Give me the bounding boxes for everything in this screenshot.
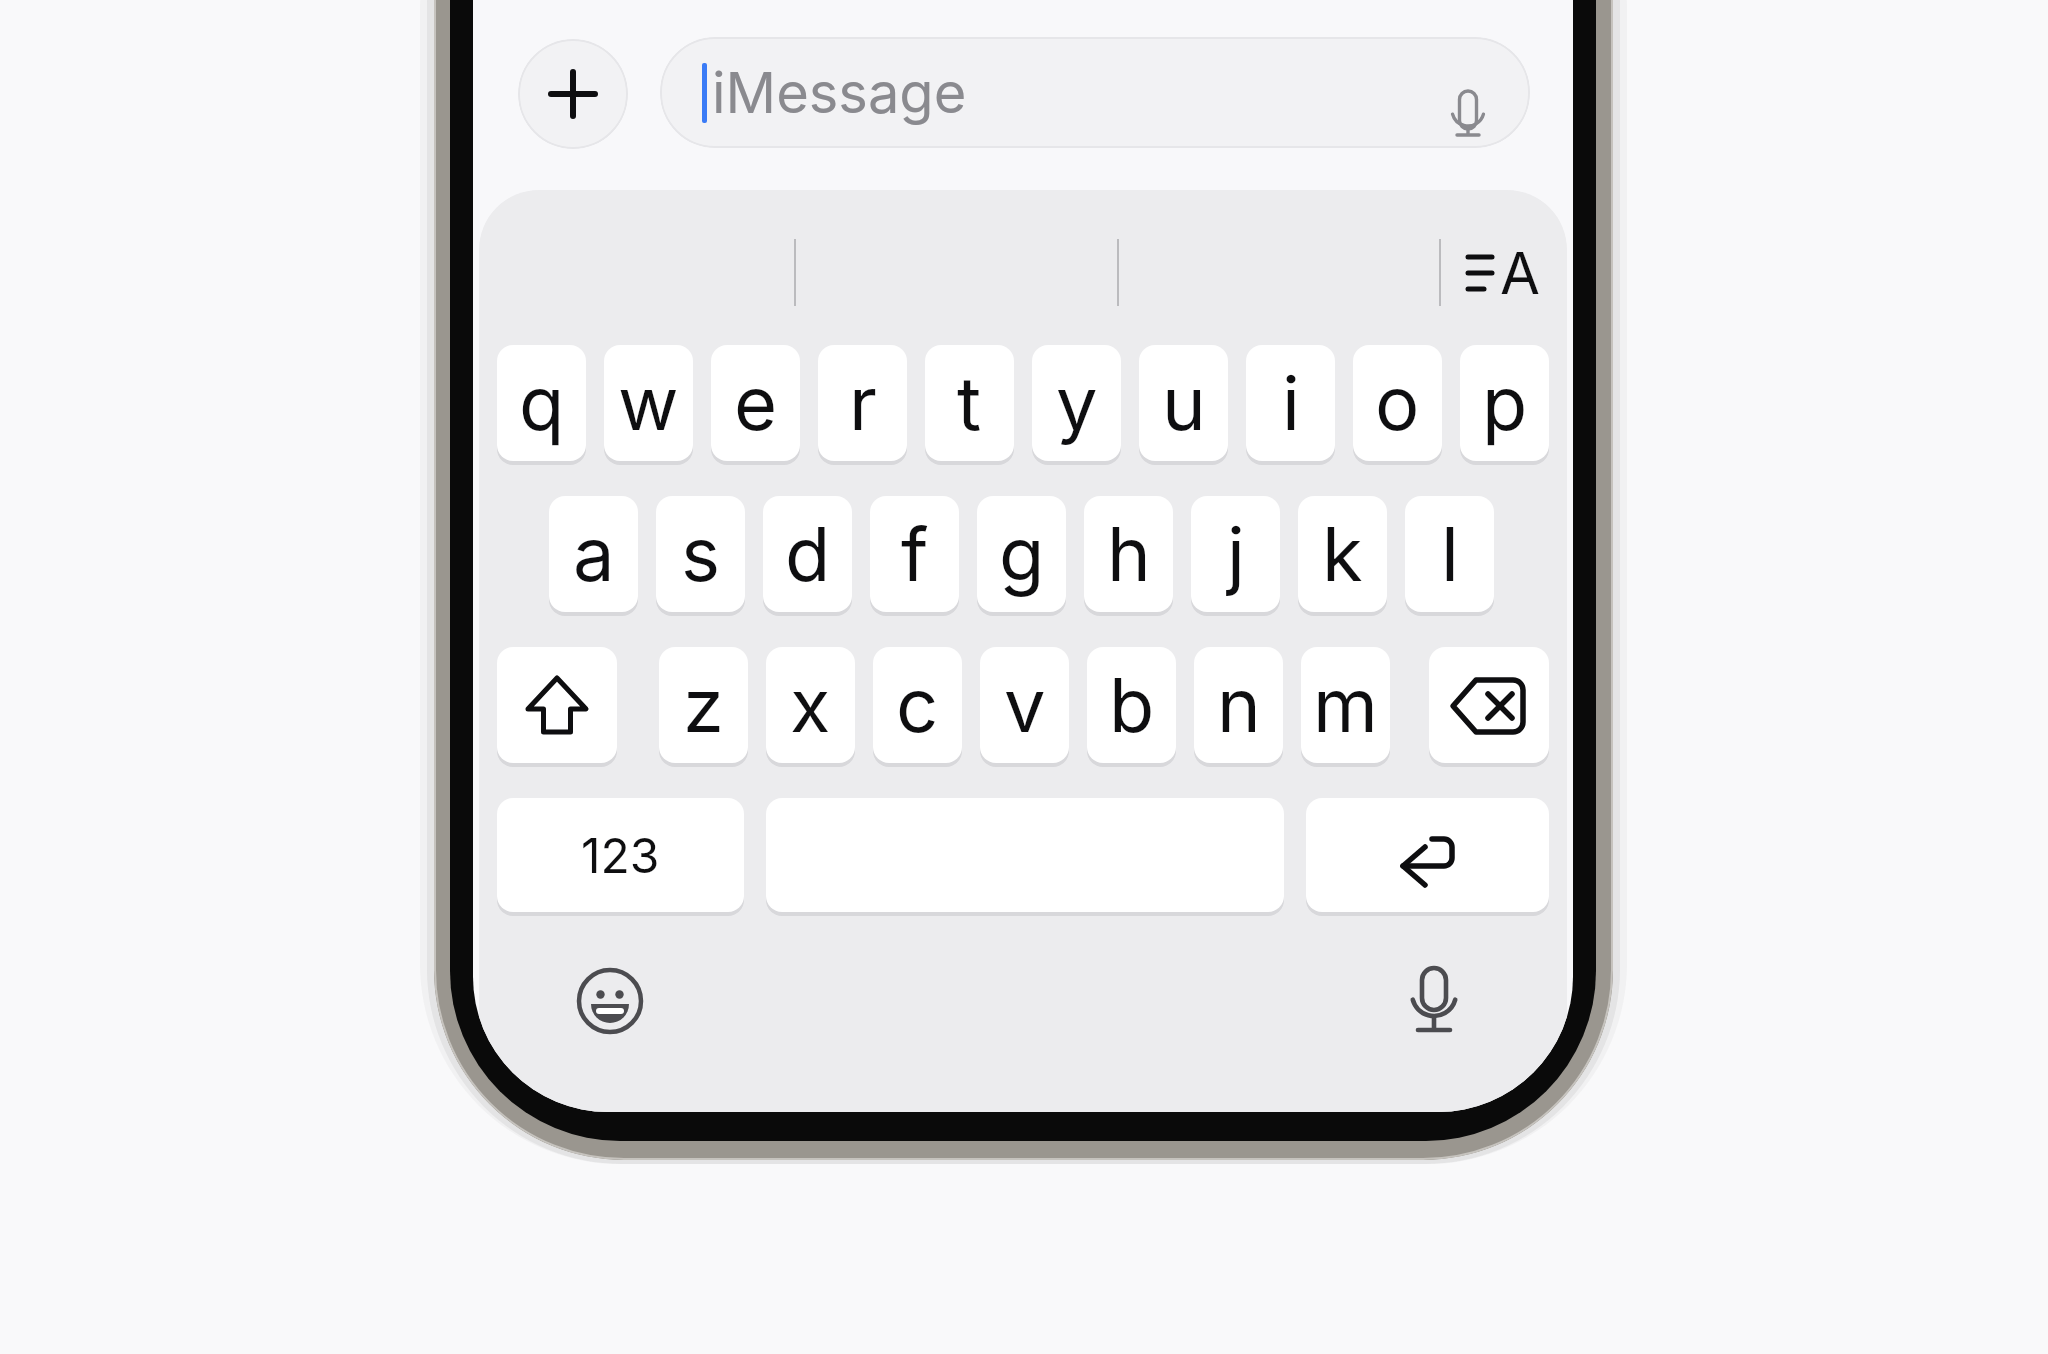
button[interactable]: j <box>1191 496 1280 612</box>
staticText: z <box>683 660 724 750</box>
button[interactable]: v <box>980 647 1069 763</box>
staticText: h <box>1107 509 1151 599</box>
button[interactable]: l <box>1405 496 1494 612</box>
staticText: l <box>1441 509 1459 599</box>
staticText: x <box>790 660 831 750</box>
staticText: iMessage <box>712 59 967 127</box>
button[interactable]: iMessage <box>660 37 1530 148</box>
button[interactable] <box>1306 798 1549 912</box>
staticText: y <box>1056 358 1098 448</box>
staticText: r <box>849 358 877 448</box>
button[interactable]: i <box>1246 345 1335 461</box>
staticText: 123 <box>581 826 660 884</box>
button[interactable]: a <box>549 496 638 612</box>
button[interactable]: n <box>1194 647 1283 763</box>
button[interactable]: p <box>1460 345 1549 461</box>
button[interactable]: r <box>818 345 907 461</box>
button[interactable]: e <box>711 345 800 461</box>
staticText: c <box>896 660 939 750</box>
button[interactable]: k <box>1298 496 1387 612</box>
button[interactable]: f <box>870 496 959 612</box>
button[interactable]: A <box>1451 235 1541 311</box>
staticText: d <box>785 509 831 599</box>
staticText: b <box>1109 660 1155 750</box>
staticText: m <box>1313 660 1378 750</box>
button[interactable]: q <box>497 345 586 461</box>
button[interactable] <box>1389 956 1479 1046</box>
staticText: o <box>1375 358 1420 448</box>
button[interactable]: h <box>1084 496 1173 612</box>
staticText: u <box>1162 358 1206 448</box>
staticText: q <box>519 358 565 448</box>
button[interactable]: y <box>1032 345 1121 461</box>
button[interactable] <box>497 647 617 763</box>
button[interactable]: m <box>1301 647 1390 763</box>
button[interactable]: o <box>1353 345 1442 461</box>
staticText: a <box>573 509 615 599</box>
staticText: e <box>734 358 778 448</box>
button[interactable]: x <box>766 647 855 763</box>
staticText: j <box>1227 509 1245 599</box>
button[interactable]: b <box>1087 647 1176 763</box>
staticText: p <box>1482 358 1528 448</box>
button[interactable]: c <box>873 647 962 763</box>
staticText: A <box>1500 238 1541 308</box>
button[interactable]: t <box>925 345 1014 461</box>
staticText: v <box>1004 660 1046 750</box>
staticText: f <box>901 509 929 599</box>
button[interactable]: 123 <box>497 798 744 912</box>
staticText: s <box>681 509 721 599</box>
staticText: t <box>957 358 982 448</box>
button[interactable]: w <box>604 345 693 461</box>
button[interactable]: u <box>1139 345 1228 461</box>
button[interactable]: g <box>977 496 1066 612</box>
staticText: k <box>1322 509 1363 599</box>
staticText: w <box>618 358 679 448</box>
button[interactable]: s <box>656 496 745 612</box>
button[interactable] <box>565 956 655 1046</box>
button[interactable]: z <box>659 647 748 763</box>
staticText: g <box>999 509 1045 599</box>
staticText: n <box>1217 660 1261 750</box>
staticText: i <box>1282 358 1300 448</box>
button[interactable] <box>518 39 628 149</box>
button[interactable]: d <box>763 496 852 612</box>
button[interactable] <box>1429 647 1549 763</box>
